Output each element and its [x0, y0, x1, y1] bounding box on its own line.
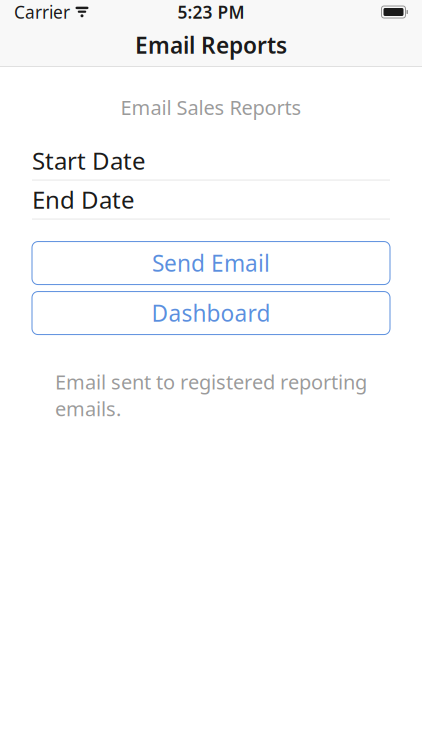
staticText: Carrier — [14, 0, 70, 23]
staticText: Start Date — [32, 145, 146, 176]
staticText: Send Email — [152, 248, 270, 278]
button[interactable]: Send Email — [32, 242, 390, 285]
button[interactable]: Dashboard — [32, 292, 390, 335]
staticText: Email sent to registered reporting email… — [55, 369, 367, 422]
staticText: End Date — [32, 184, 135, 215]
staticText: 5:23 PM — [177, 0, 244, 23]
staticText: Email Reports — [135, 30, 287, 60]
staticText: Email Sales Reports — [120, 94, 301, 121]
staticText: Dashboard — [151, 298, 270, 328]
